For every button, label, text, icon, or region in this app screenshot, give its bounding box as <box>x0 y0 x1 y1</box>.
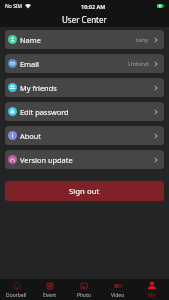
staticText: Sign out <box>69 186 100 197</box>
button[interactable]: Version update <box>5 150 164 169</box>
button[interactable]: Video <box>101 279 135 300</box>
staticText: Email <box>20 59 39 69</box>
staticText: Unbind <box>128 60 149 68</box>
staticText: Edit password <box>20 107 69 117</box>
staticText: Name <box>20 35 41 45</box>
staticText: tany <box>136 36 149 44</box>
button[interactable]: Doorbell <box>0 279 33 300</box>
button[interactable]: Email <box>5 54 164 73</box>
staticText: About <box>20 131 41 141</box>
staticText: Version update <box>20 155 73 165</box>
staticText: Doorbell <box>6 292 27 299</box>
staticText: Event <box>43 292 57 299</box>
staticText: Me <box>148 292 156 299</box>
button[interactable]: My friends <box>5 78 164 97</box>
button[interactable]: Edit password <box>5 102 164 121</box>
staticText: My friends <box>20 83 57 93</box>
button[interactable]: Me <box>135 279 169 300</box>
button[interactable]: Name <box>5 30 164 49</box>
button[interactable]: Sign out <box>5 181 164 201</box>
staticText: Photo <box>77 292 91 299</box>
staticText: 10:02 AM <box>81 3 106 10</box>
staticText: Video <box>111 292 125 299</box>
button[interactable]: Photo <box>67 279 101 300</box>
button[interactable]: Event <box>33 279 67 300</box>
staticText: User Center <box>62 14 107 25</box>
staticText: No SIM <box>5 3 23 10</box>
button[interactable]: About <box>5 126 164 145</box>
